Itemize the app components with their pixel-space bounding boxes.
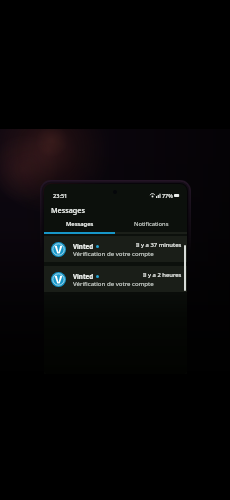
staticText: Il y a 2 heures: [143, 271, 182, 279]
staticText: 77%: [162, 192, 173, 199]
staticText: Messages: [51, 205, 85, 215]
button[interactable]: Vinted: [44, 266, 187, 292]
button[interactable]: Vinted: [44, 236, 187, 262]
staticText: Vérification de votre compte: [73, 249, 154, 257]
staticText: Notifications: [134, 220, 169, 228]
button[interactable]: Messages: [51, 205, 85, 215]
staticText: Vinted: [73, 242, 94, 250]
button[interactable]: Notifications: [115, 219, 187, 228]
staticText: Messages: [66, 220, 94, 228]
staticText: Vinted: [73, 272, 94, 280]
staticText: Il y a 37 minutes: [136, 241, 182, 249]
staticText: 23:51: [53, 192, 68, 200]
staticText: Vérification de votre compte: [73, 279, 154, 287]
button[interactable]: Messages: [44, 219, 115, 228]
